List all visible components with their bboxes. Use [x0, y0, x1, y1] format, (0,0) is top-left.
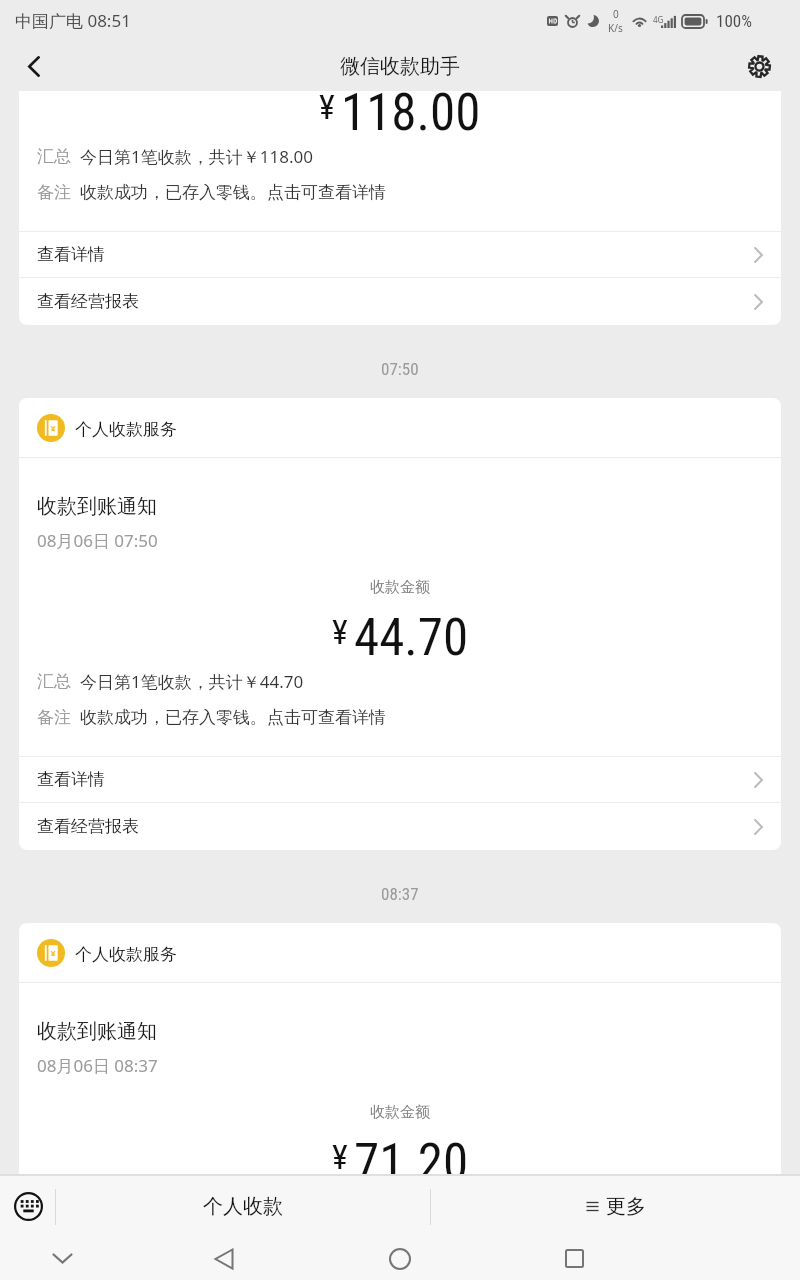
button[interactable]: 查看经营报表 [19, 278, 781, 325]
staticText: 4G [653, 14, 664, 25]
staticText: 100% [716, 11, 752, 31]
staticText: 个人收款服务 [75, 419, 177, 440]
button[interactable]: Home [376, 1237, 424, 1280]
button[interactable]: 查看详情 [19, 757, 781, 802]
staticText: ¥ [332, 1137, 348, 1174]
staticText: 收款到账通知 [37, 1019, 157, 1044]
button[interactable]: Back [9, 41, 59, 91]
staticText: 今日第1笔收款，共计￥44.70 [80, 670, 304, 693]
button[interactable]: 更多 [431, 1176, 800, 1237]
staticText: 收款成功，已存入零钱。点击可查看详情 [80, 707, 386, 728]
button[interactable]: 查看详情 [19, 232, 781, 277]
staticText: 备注 [37, 182, 71, 203]
staticText: 08:37 [381, 884, 419, 904]
staticText: 44.70 [354, 608, 469, 668]
staticText: 汇总 [37, 671, 71, 692]
button[interactable]: 查看经营报表 [19, 803, 781, 850]
staticText: 118.00 [341, 91, 481, 143]
staticText: 收款金额 [19, 1103, 781, 1122]
staticText: 微信收款助手 [340, 54, 460, 79]
staticText: ¥ [332, 612, 348, 652]
staticText: ¥ [319, 91, 335, 127]
button[interactable]: 个人收款服务 [19, 398, 781, 457]
button[interactable]: Recent apps [550, 1237, 598, 1280]
staticText: 收款成功，已存入零钱。点击可查看详情 [80, 182, 386, 203]
staticText: 备注 [37, 707, 71, 728]
staticText: 收款到账通知 [37, 494, 157, 519]
staticText: 查看经营报表 [37, 816, 139, 837]
staticText: 查看详情 [37, 769, 105, 790]
staticText: 71.20 [354, 1133, 469, 1174]
button[interactable]: 个人收款 [56, 1176, 430, 1237]
staticText: 个人收款 [203, 1194, 283, 1219]
staticText: 07:50 [381, 359, 419, 379]
staticText: 更多 [606, 1194, 646, 1219]
button[interactable]: 收款到账通知 [19, 983, 781, 1174]
staticText: 08月06日 07:50 [37, 529, 158, 552]
staticText: 查看经营报表 [37, 291, 139, 312]
button[interactable]: 收款到账通知 [19, 91, 781, 231]
staticText: 今日第1笔收款，共计￥118.00 [80, 145, 313, 168]
staticText: 08月06日 08:37 [37, 1054, 158, 1077]
button[interactable]: Keyboard [0, 1176, 56, 1237]
staticText: 汇总 [37, 146, 71, 167]
button[interactable]: Back [200, 1237, 248, 1280]
button[interactable]: 个人收款服务 [19, 923, 781, 982]
staticText: 查看详情 [37, 244, 105, 265]
staticText: 个人收款服务 [75, 944, 177, 965]
staticText: K/s [608, 21, 623, 35]
button[interactable]: 收款到账通知 [19, 458, 781, 756]
staticText: 中国广电 08:51 [15, 9, 131, 32]
staticText: 0 [613, 7, 619, 21]
button[interactable]: Hide keyboard [38, 1237, 86, 1280]
staticText: 收款金额 [19, 578, 781, 597]
button[interactable]: Settings [734, 41, 784, 91]
